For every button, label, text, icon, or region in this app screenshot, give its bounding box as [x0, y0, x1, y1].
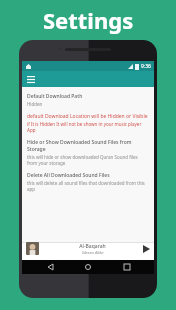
staticText: Hidden: [27, 101, 43, 107]
staticText: Idrees Abkr: [82, 250, 104, 255]
button[interactable]: default Download Location will be Hidden…: [22, 110, 154, 136]
staticText: Hide or Show Downloaded Sound Files from…: [27, 139, 149, 153]
staticText: if It is Hidden It will not be shown in …: [27, 121, 149, 133]
staticText: this will hide or show downloaded Quran …: [27, 154, 149, 166]
button[interactable]: Open navigation menu: [22, 71, 154, 87]
button[interactable]: Back: [39, 260, 61, 274]
staticText: default Download Location will be Hidden…: [27, 113, 148, 120]
staticText: Delete All Downloaded Sound Files: [27, 172, 110, 179]
staticText: this will delete all sound files that do…: [27, 180, 149, 192]
button[interactable]: Hide or Show Downloaded Sound Files from…: [22, 136, 154, 169]
button[interactable]: Play: [143, 245, 150, 253]
button[interactable]: Recent apps: [116, 260, 138, 274]
button[interactable]: Open navigation menu: [27, 76, 35, 83]
button[interactable]: Delete All Downloaded Sound Files: [22, 169, 154, 195]
staticText: Al-Baqarah: [79, 243, 106, 250]
staticText: Default Download Path: [27, 93, 83, 100]
staticText: Settings: [43, 5, 134, 35]
staticText: 9:36: [141, 63, 151, 70]
button[interactable]: Default Download Path: [22, 90, 154, 110]
button[interactable]: Al-Baqarah: [26, 242, 150, 255]
button[interactable]: Home: [77, 260, 99, 274]
